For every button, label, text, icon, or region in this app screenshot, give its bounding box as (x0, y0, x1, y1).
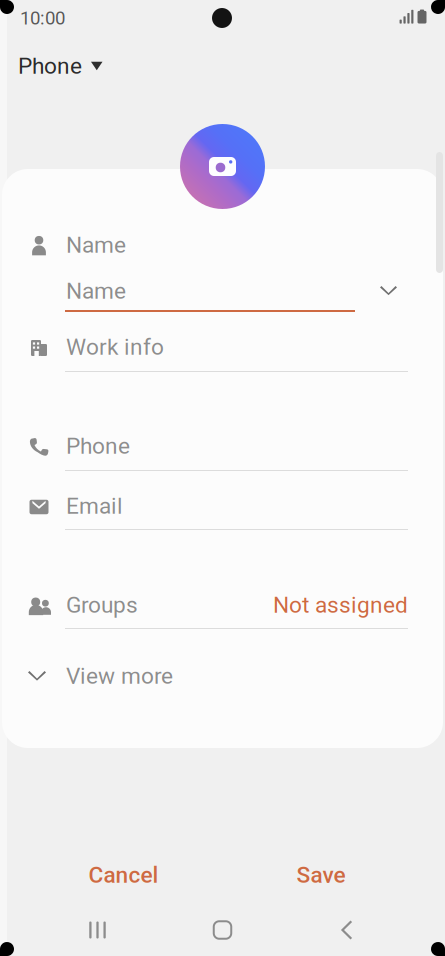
staticText: Not assigned (273, 592, 408, 618)
staticText: Groups (66, 592, 138, 618)
button[interactable]: Recents (42, 906, 152, 954)
staticText: Email (66, 493, 123, 519)
button[interactable]: Email (2, 494, 443, 534)
staticText: Work info (66, 334, 164, 360)
button[interactable]: Name (2, 233, 443, 273)
staticText: 10:00 (20, 7, 65, 29)
button[interactable]: Back (291, 906, 401, 954)
button[interactable]: Cancel (48, 851, 198, 899)
button[interactable]: Save (246, 851, 396, 899)
staticText: Phone (18, 53, 82, 79)
button[interactable]: Groups (2, 593, 443, 633)
button[interactable]: Work info (2, 335, 443, 375)
button[interactable]: Phone (18, 44, 168, 88)
button[interactable]: Home (167, 906, 277, 954)
staticText: Name (66, 232, 126, 258)
staticText: Cancel (88, 862, 158, 888)
button[interactable]: Phone (2, 434, 443, 474)
button[interactable]: View more (2, 664, 443, 700)
staticText: View more (66, 663, 173, 689)
button[interactable]: Name (2, 279, 443, 319)
staticText: Save (296, 862, 345, 888)
staticText: Phone (66, 433, 130, 459)
staticText: Name (66, 278, 126, 304)
